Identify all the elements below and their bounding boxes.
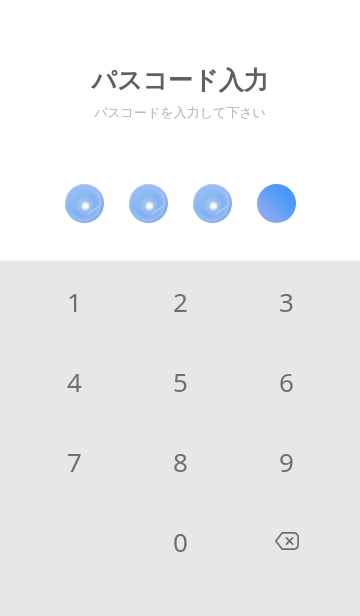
staticText: 3 — [279, 284, 294, 319]
button[interactable]: 9 — [233, 421, 339, 501]
staticText: 1 — [67, 284, 82, 319]
button[interactable]: 3 — [233, 261, 339, 341]
staticText: パスコード入力 — [91, 65, 269, 96]
button[interactable]: 4 — [21, 341, 127, 421]
staticText: 4 — [67, 364, 82, 399]
button[interactable]: 7 — [21, 421, 127, 501]
staticText: 8 — [173, 444, 188, 479]
staticText: 2 — [173, 284, 188, 319]
staticText: 9 — [279, 444, 294, 479]
staticText: 5 — [173, 364, 188, 399]
button[interactable]: 0 — [127, 501, 233, 581]
button[interactable]: 8 — [127, 421, 233, 501]
staticText: パスコードを入力して下さい — [94, 104, 266, 120]
button[interactable]: 5 — [127, 341, 233, 421]
button[interactable]: 1 — [21, 261, 127, 341]
staticText: 6 — [279, 364, 294, 399]
button[interactable]: 2 — [127, 261, 233, 341]
button[interactable]: Backspace — [233, 501, 339, 581]
staticText: 7 — [67, 444, 82, 479]
button[interactable]: 6 — [233, 341, 339, 421]
staticText: 0 — [173, 524, 188, 559]
other: Backspace — [274, 532, 299, 550]
